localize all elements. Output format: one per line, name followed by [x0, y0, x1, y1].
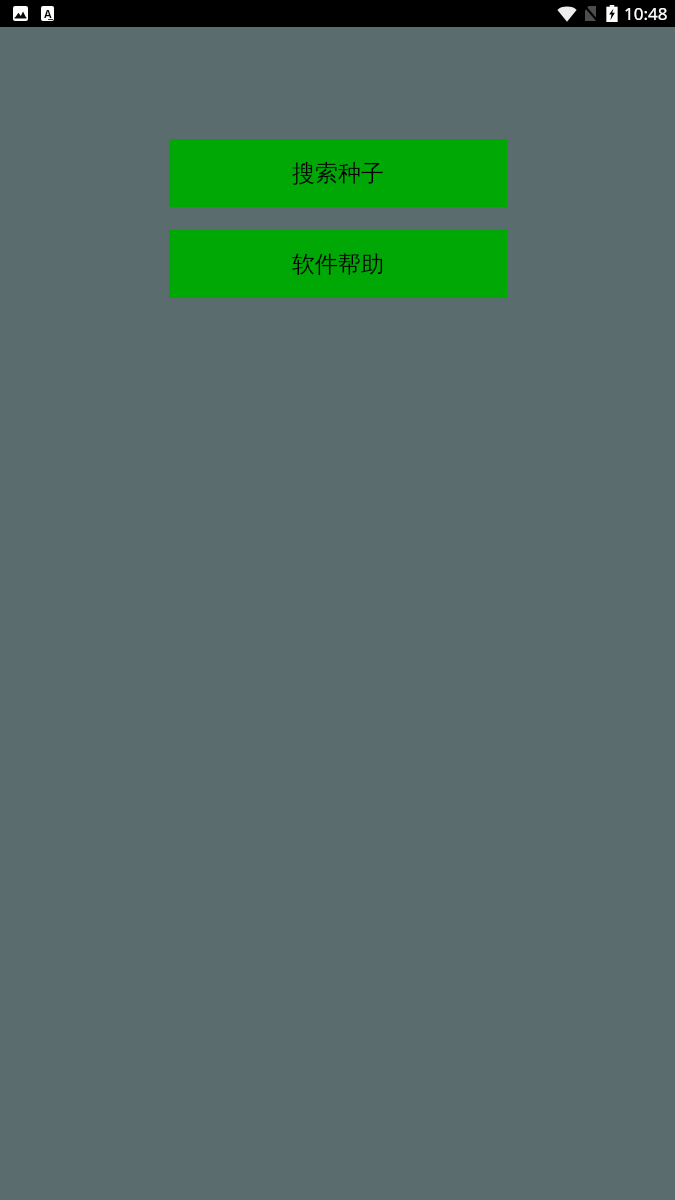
- staticText: 搜索种子: [292, 159, 384, 188]
- staticText: A: [44, 6, 52, 21]
- other: Screenshot captured: [13, 6, 28, 21]
- other: No SIM card: [585, 6, 596, 21]
- staticText: 软件帮助: [292, 250, 384, 279]
- button[interactable]: 搜索种子: [169, 139, 507, 207]
- other: Wi-Fi connected: [557, 6, 577, 22]
- other: Battery charging: [606, 5, 618, 22]
- staticText: 10:48: [624, 2, 668, 25]
- other: Notification: [41, 6, 54, 21]
- button[interactable]: 软件帮助: [169, 230, 507, 298]
